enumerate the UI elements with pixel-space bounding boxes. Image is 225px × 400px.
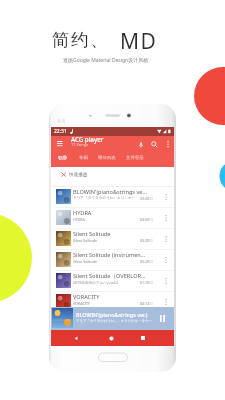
staticText: VORACITY: [73, 293, 147, 301]
staticText: 快速播放: [69, 172, 88, 178]
staticText: 播放列表: [98, 155, 116, 161]
staticText: 简约、: [52, 29, 110, 51]
staticText: HYDRA: [73, 209, 147, 217]
button[interactable]: Open navigation menu: [57, 141, 63, 146]
button[interactable]: HYDRA: [51, 207, 174, 228]
staticText: HYDRA: [73, 217, 137, 222]
staticText: 04:56: [140, 217, 150, 222]
button[interactable]: BLOWIN'(piano&strings ver.): [51, 186, 174, 207]
staticText: 文件音乐: [126, 155, 144, 161]
staticText: Silent Solitude（OVERLORD 第三…: [73, 272, 147, 280]
staticText: 04:12: [140, 301, 150, 306]
staticText: 2019年発売のアルバムvol.2: [73, 280, 137, 285]
button[interactable]: Song options: [161, 270, 170, 291]
staticText: ドリア「タイヨウのうた」、オリジナル・サウン…: [76, 319, 152, 323]
button[interactable]: Search: [149, 139, 160, 150]
staticText: 01:15: [140, 280, 150, 285]
staticText: ACG player: [71, 135, 104, 143]
button[interactable]: BLOWIN'(piano&strings ver.): [51, 307, 174, 330]
staticText: MD: [120, 27, 158, 56]
button[interactable]: Recent apps: [134, 330, 152, 346]
button[interactable]: More options: [162, 139, 173, 150]
button[interactable]: Silent Solitude (instrumental): [51, 249, 174, 270]
staticText: 03:28: [140, 259, 150, 264]
staticText: Silent Solitude: [73, 230, 147, 238]
staticText: 11 Songs: [71, 142, 89, 147]
button[interactable]: Song options: [161, 207, 170, 228]
button[interactable]: 专辑: [77, 154, 90, 167]
button[interactable]: 文件音乐: [124, 154, 146, 167]
staticText: 歌曲: [58, 155, 67, 161]
staticText: BLOWIN'(piano&strings ver.): [73, 188, 147, 196]
button[interactable]: Pause: [156, 307, 169, 330]
button[interactable]: Back: [67, 330, 85, 346]
button[interactable]: Silent Solitude: [51, 228, 174, 249]
button[interactable]: 播放列表: [96, 154, 118, 167]
staticText: 03:28: [140, 196, 150, 201]
staticText: BLOWIN'(piano&strings ver.): [76, 311, 154, 318]
button[interactable]: Song options: [161, 228, 170, 249]
staticText: ドリア「タイヨウのうた」より、オリジナル: [73, 196, 137, 201]
staticText: Silent Solitude: [73, 259, 137, 264]
staticText: 03:28: [140, 238, 150, 243]
staticText: 遵循Google Material Design设计风格: [63, 57, 149, 64]
button[interactable]: Home: [102, 330, 120, 346]
button[interactable]: 快速播放: [51, 167, 174, 186]
button[interactable]: VORACITY: [51, 291, 174, 312]
button[interactable]: Voice search: [135, 139, 146, 150]
button[interactable]: Silent Solitude（OVERLORD 第三…: [51, 270, 174, 291]
button[interactable]: Song options: [161, 291, 170, 312]
button[interactable]: Song options: [161, 249, 170, 270]
staticText: Silent Solitude: [73, 238, 137, 243]
staticText: 22:31: [54, 128, 67, 135]
staticText: Silent Solitude (instrumental): [73, 251, 147, 259]
button[interactable]: 歌曲: [56, 154, 69, 167]
button[interactable]: Song options: [161, 186, 170, 207]
staticText: VORACITY: [73, 301, 137, 306]
staticText: 专辑: [79, 155, 88, 161]
